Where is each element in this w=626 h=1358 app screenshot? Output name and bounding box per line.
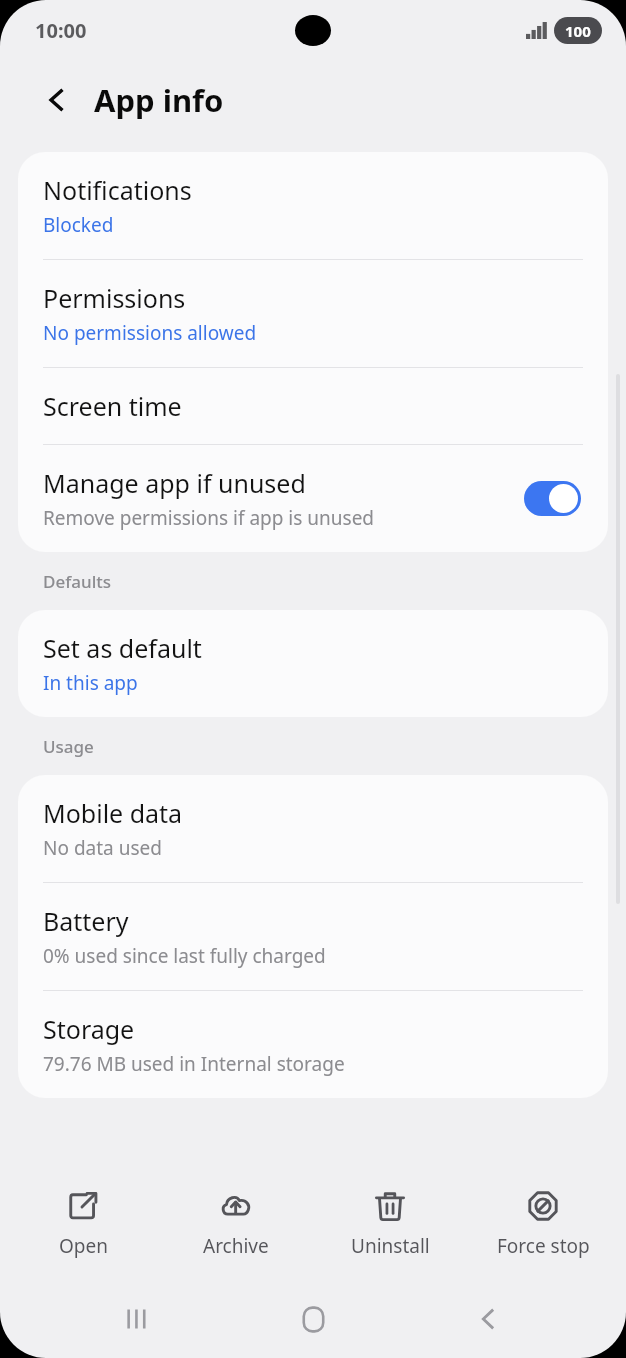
staticText: Screen time	[43, 389, 182, 423]
staticText: Remove permissions if app is unused	[43, 505, 375, 531]
staticText: No data used	[43, 835, 162, 861]
staticText: 100	[565, 21, 591, 41]
staticText: Uninstall	[351, 1233, 430, 1259]
staticText: Defaults	[43, 570, 111, 593]
staticText: Set as default	[43, 631, 202, 665]
button[interactable]: Battery	[18, 883, 608, 990]
staticText: Storage	[43, 1012, 135, 1046]
staticText: Archive	[203, 1233, 269, 1259]
staticText: 79.76 MB used in Internal storage	[43, 1051, 345, 1077]
button[interactable]: Set as default	[18, 610, 608, 717]
staticText: Permissions	[43, 281, 186, 315]
staticText: Force stop	[497, 1233, 590, 1259]
button[interactable]: Back	[34, 76, 82, 124]
staticText: Manage app if unused	[43, 466, 306, 500]
button[interactable]: Screen time	[18, 368, 608, 444]
button[interactable]: Recents	[100, 1281, 176, 1357]
button[interactable]: Home	[275, 1281, 351, 1357]
button[interactable]: Force stop	[473, 1183, 613, 1265]
button[interactable]: Open	[13, 1183, 153, 1265]
button[interactable]: Back	[451, 1281, 527, 1357]
staticText: Mobile data	[43, 796, 183, 830]
staticText: 10:00	[35, 17, 87, 44]
button[interactable]: Uninstall	[320, 1183, 460, 1265]
staticText: Open	[59, 1233, 108, 1259]
button[interactable]: Notifications	[18, 152, 608, 259]
button[interactable]: Mobile data	[18, 775, 608, 882]
staticText: Battery	[43, 904, 129, 938]
button[interactable]: Archive	[166, 1183, 306, 1265]
button[interactable]: Manage app if unused	[18, 445, 608, 552]
staticText: Blocked	[43, 212, 114, 238]
staticText: App info	[94, 79, 224, 121]
staticText: Usage	[43, 735, 94, 758]
staticText: No permissions allowed	[43, 320, 257, 346]
staticText: In this app	[43, 670, 138, 696]
staticText: Notifications	[43, 173, 192, 207]
button[interactable]: Permissions	[18, 260, 608, 367]
staticText: 0% used since last fully charged	[43, 943, 326, 969]
button[interactable]: Storage	[18, 991, 608, 1098]
